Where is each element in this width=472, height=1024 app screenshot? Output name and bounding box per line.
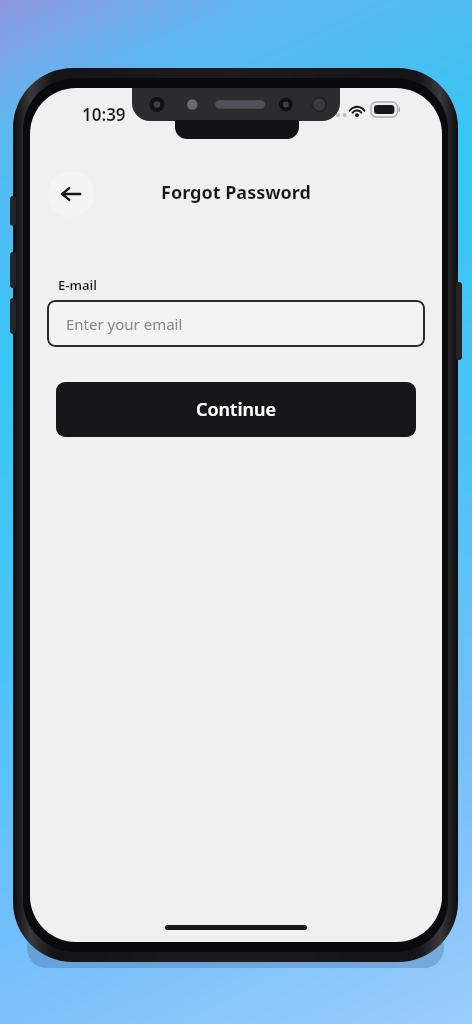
button[interactable]: Continue xyxy=(56,382,416,437)
staticText: 10:39 xyxy=(82,103,126,126)
staticText: E-mail xyxy=(58,276,97,294)
staticText: Forgot Password xyxy=(30,180,442,205)
button[interactable]: Enter your email xyxy=(47,300,425,347)
button[interactable]: Back xyxy=(48,171,94,217)
staticText: Enter your email xyxy=(66,314,183,334)
staticText: Continue xyxy=(196,397,276,422)
